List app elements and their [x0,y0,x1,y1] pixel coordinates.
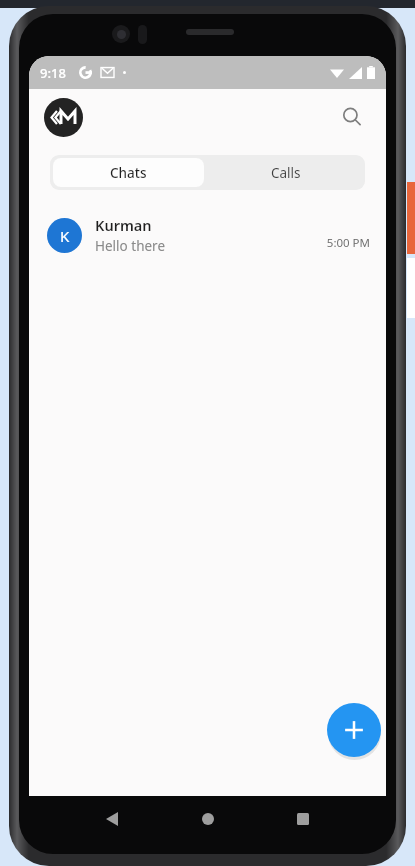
button[interactable]: Chats [53,158,204,187]
button[interactable]: New chat [327,703,381,757]
staticText: Hello there [95,237,166,255]
staticText: Kurman [95,215,152,235]
staticText: Calls [271,164,301,182]
staticText: 9:18 [40,64,66,82]
button[interactable]: K [29,209,386,261]
button[interactable]: Search [332,97,372,137]
staticText: 5:00 PM [326,235,370,251]
button[interactable]: Home [191,802,225,836]
button[interactable]: Back [95,802,129,836]
button[interactable]: Profile [44,98,83,137]
staticText: K [60,226,70,246]
button[interactable]: Recent apps [286,802,320,836]
button[interactable]: Calls [207,155,365,190]
staticText: Chats [110,164,147,182]
